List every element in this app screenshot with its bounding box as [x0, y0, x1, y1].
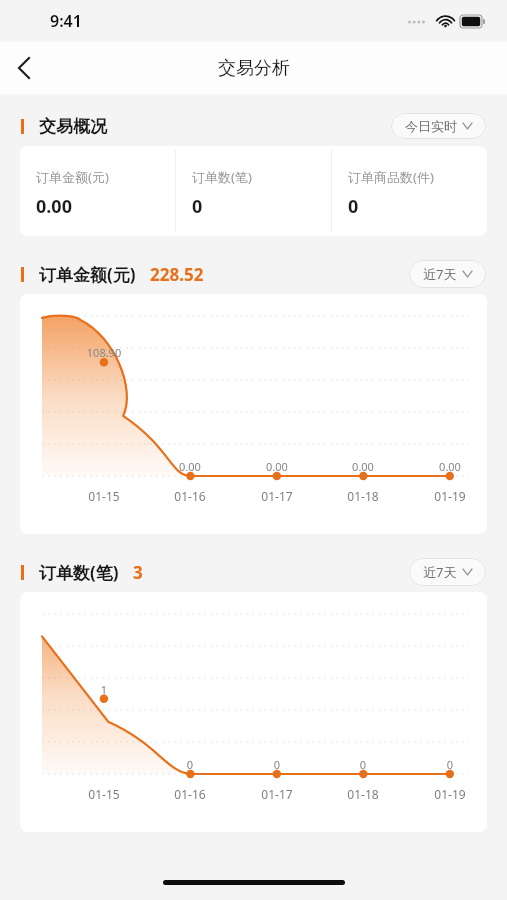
staticText: 0.00 [251, 459, 303, 474]
staticText: 近7天 [423, 563, 457, 581]
staticText: 01-19 [424, 786, 476, 802]
button[interactable]: 订单商品数(件) [332, 146, 487, 236]
button[interactable]: 订单数(笔) [176, 146, 331, 236]
button[interactable]: 近7天 [409, 558, 486, 586]
staticText: 0 [337, 757, 389, 772]
staticText: 0.00 [36, 194, 72, 219]
staticText: 0 [192, 194, 203, 219]
staticText: 0.00 [164, 459, 216, 474]
staticText: 近7天 [423, 265, 457, 283]
staticText: 0 [164, 757, 216, 772]
button[interactable]: Back [0, 44, 48, 92]
button[interactable]: 今日实时 [391, 113, 486, 139]
staticText: 01-17 [251, 488, 303, 504]
staticText: 108.90 [78, 345, 130, 360]
staticText: 0.00 [337, 459, 389, 474]
staticText: 订单数(笔) [192, 168, 252, 186]
staticText: 交易概况 [39, 116, 107, 137]
staticText: 0 [348, 194, 359, 219]
staticText: 3 [133, 561, 143, 584]
staticText: 1 [78, 682, 130, 697]
button[interactable]: 01-15 [20, 592, 487, 832]
staticText: 订单金额(元) [39, 263, 136, 286]
staticText: 01-15 [78, 786, 130, 802]
staticText: 0 [251, 757, 303, 772]
staticText: 01-16 [164, 488, 216, 504]
button[interactable]: 订单金额(元) [20, 146, 175, 236]
staticText: 01-19 [424, 488, 476, 504]
staticText: 01-17 [251, 786, 303, 802]
staticText: 9:41 [50, 10, 82, 32]
button[interactable]: 近7天 [409, 260, 486, 288]
staticText: 订单商品数(件) [348, 168, 434, 186]
button[interactable]: 01-15 [20, 294, 487, 534]
staticText: 228.52 [150, 263, 204, 286]
staticText: 01-15 [78, 488, 130, 504]
staticText: 今日实时 [405, 118, 457, 134]
staticText: 交易分析 [218, 57, 290, 80]
staticText: 0 [424, 757, 476, 772]
staticText: 01-16 [164, 786, 216, 802]
staticText: 订单数(笔) [39, 561, 119, 584]
staticText: 0.00 [424, 459, 476, 474]
staticText: 01-18 [337, 488, 389, 504]
staticText: 订单金额(元) [36, 168, 109, 186]
staticText: 01-18 [337, 786, 389, 802]
